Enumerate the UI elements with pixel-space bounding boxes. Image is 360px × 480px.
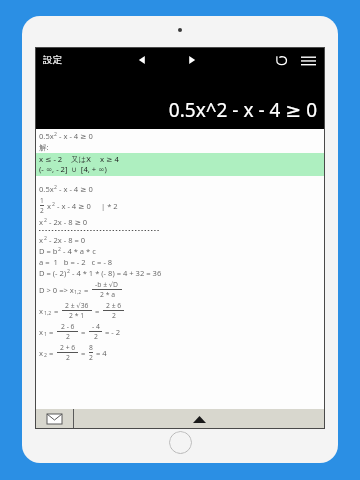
- staticText: | * 2: [101, 201, 118, 211]
- staticText: x: [39, 235, 44, 245]
- staticText: 0.5x: [39, 184, 54, 194]
- staticText: 8: [89, 343, 93, 352]
- button[interactable]: Undo: [271, 50, 291, 70]
- staticText: x: [47, 201, 52, 211]
- staticText: - x - 4 ≥ 0: [57, 184, 93, 194]
- staticText: 1,2: [74, 288, 82, 295]
- staticText: 0.5x^2 - x - 4 ≥ 0: [168, 97, 317, 123]
- staticText: = - 2: [103, 327, 121, 337]
- staticText: 1,2: [44, 309, 52, 316]
- staticText: 又はX: [71, 154, 92, 164]
- button[interactable]: Menu: [297, 49, 319, 71]
- button[interactable]: Home: [169, 431, 192, 454]
- button[interactable]: Previous: [133, 51, 151, 69]
- staticText: 2: [52, 200, 55, 207]
- staticText: x: [39, 306, 44, 316]
- staticText: 2: [54, 183, 57, 190]
- staticText: 2: [89, 353, 93, 362]
- staticText: 2: [66, 353, 70, 362]
- staticText: 2: [112, 311, 116, 320]
- staticText: x: [39, 217, 44, 227]
- staticText: =: [93, 306, 102, 316]
- staticText: x: [39, 327, 44, 337]
- staticText: =: [79, 348, 88, 358]
- staticText: =: [82, 285, 91, 295]
- staticText: x: [39, 348, 44, 358]
- staticText: =: [47, 327, 56, 337]
- staticText: 1: [44, 330, 47, 337]
- staticText: 2: [54, 130, 57, 137]
- staticText: D = (- 2): [39, 268, 67, 278]
- staticText: 0.5x: [39, 131, 54, 141]
- staticText: x ≤ - 2: [39, 154, 63, 164]
- staticText: 2: [40, 206, 44, 215]
- staticText: 2 + 6: [60, 343, 76, 352]
- button[interactable]: Expand: [74, 409, 325, 429]
- staticText: - 4 * a * c: [61, 246, 96, 256]
- staticText: 2: [44, 351, 47, 358]
- staticText: 2 * 1: [69, 311, 85, 320]
- staticText: 2: [94, 332, 98, 341]
- staticText: 2 - 6: [61, 322, 75, 331]
- staticText: =: [52, 306, 61, 316]
- staticText: - x - 4 ≥ 0: [57, 131, 93, 141]
- staticText: = 4: [94, 348, 107, 358]
- staticText: - 4: [92, 322, 100, 331]
- button[interactable]: Mail: [35, 409, 73, 429]
- staticText: 2: [58, 245, 61, 252]
- button[interactable]: Next: [183, 51, 201, 69]
- staticText: 2: [66, 332, 70, 341]
- staticText: - 2x - 8 = 0: [47, 235, 86, 245]
- staticText: - x - 4 ≥ 0: [55, 201, 91, 211]
- staticText: D > 0 => x: [39, 285, 74, 295]
- staticText: -b ± √D: [95, 280, 119, 289]
- button[interactable]: 設定: [41, 52, 64, 68]
- staticText: - 2x - 8 ≥ 0: [47, 217, 88, 227]
- staticText: - 4 * 1 * (- 8) = 4 + 32 = 36: [70, 268, 162, 278]
- staticText: =: [79, 327, 88, 337]
- staticText: a = 1 b = - 2 c = - 8: [39, 257, 113, 267]
- staticText: 2: [67, 267, 70, 274]
- staticText: 1: [40, 196, 44, 205]
- staticText: 2 ± 6: [106, 301, 122, 310]
- staticText: 2: [44, 234, 47, 241]
- staticText: x ≥ 4: [100, 154, 119, 164]
- staticText: 2 ± √36: [65, 301, 89, 310]
- staticText: (- ∞, - 2] ∪ [4, + ∞): [39, 164, 107, 174]
- staticText: 設定: [43, 54, 62, 66]
- staticText: =: [47, 348, 56, 358]
- staticText: 2 * a: [100, 290, 115, 299]
- staticText: D = b: [39, 246, 58, 256]
- staticText: 解:: [39, 142, 49, 152]
- staticText: 2: [44, 216, 47, 223]
